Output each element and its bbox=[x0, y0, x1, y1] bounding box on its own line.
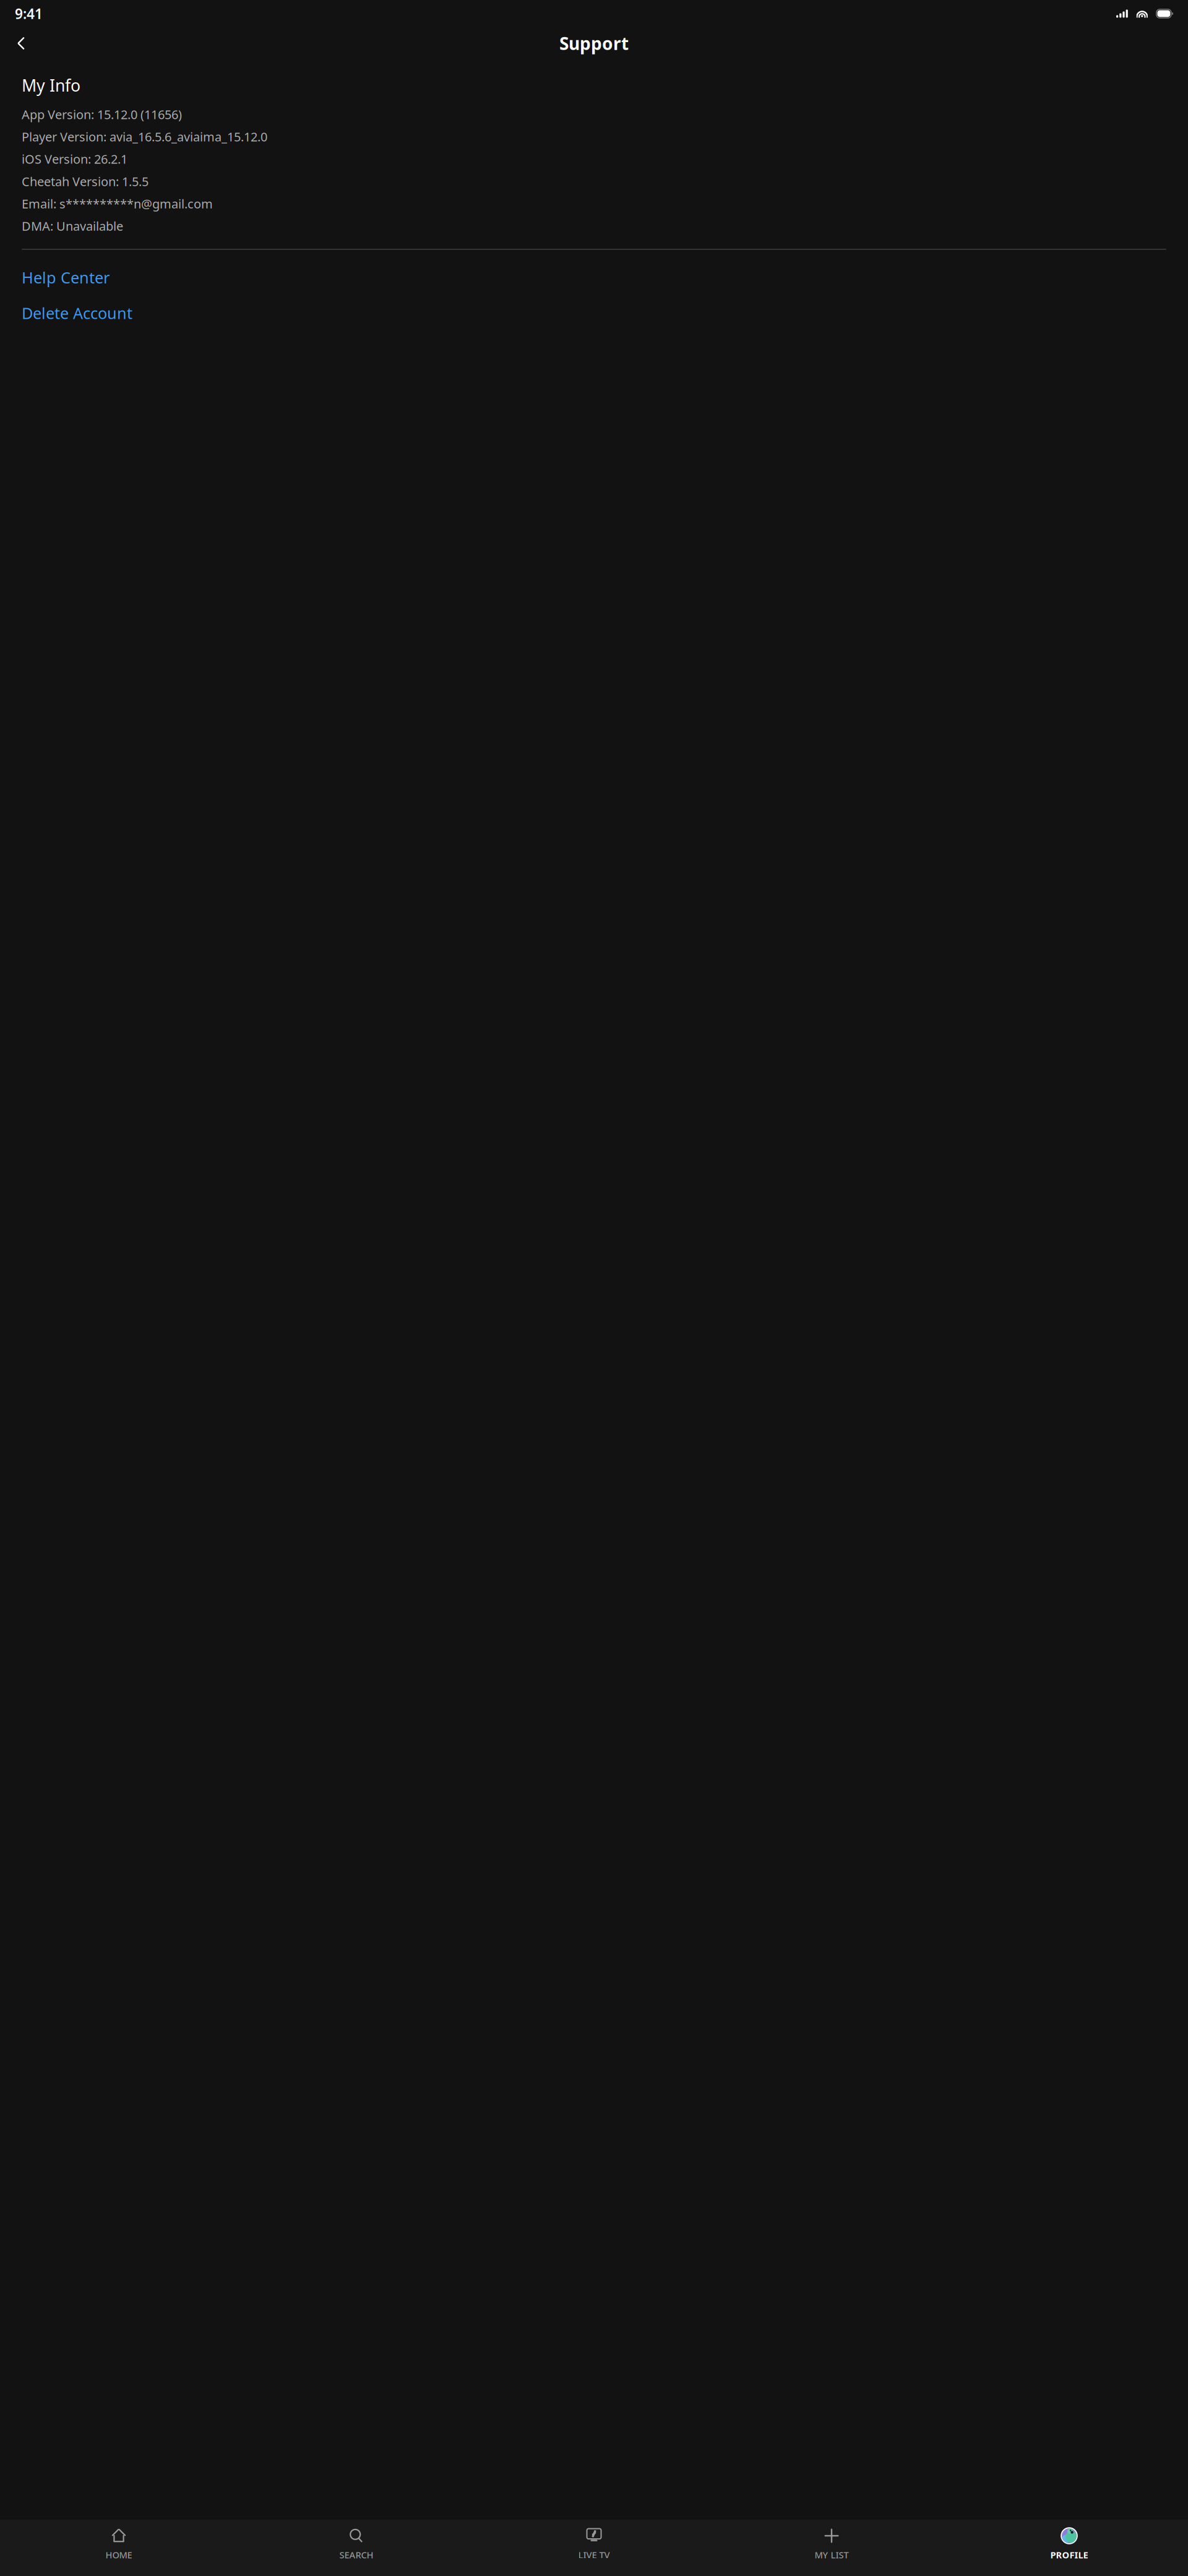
button[interactable]: Back bbox=[7, 30, 35, 57]
staticText: iOS Version: 26.2.1 bbox=[22, 151, 127, 167]
button[interactable]: Help Center bbox=[22, 263, 1166, 291]
staticText: DMA: Unavailable bbox=[22, 218, 123, 234]
staticText: MY LIST bbox=[815, 2549, 849, 2561]
button[interactable]: LIVE TV bbox=[475, 2520, 713, 2567]
button[interactable]: MY LIST bbox=[713, 2520, 950, 2567]
button[interactable]: HOME bbox=[0, 2520, 238, 2567]
staticText: 9:41 bbox=[15, 4, 43, 23]
button[interactable]: Delete Account bbox=[22, 299, 1166, 327]
staticText: PROFILE bbox=[1050, 2549, 1088, 2561]
button[interactable]: SEARCH bbox=[238, 2520, 475, 2567]
staticText: My Info bbox=[22, 74, 80, 96]
staticText: HOME bbox=[105, 2549, 132, 2561]
button[interactable]: PROFILE bbox=[950, 2520, 1188, 2567]
staticText: LIVE TV bbox=[578, 2549, 610, 2561]
staticText: Cheetah Version: 1.5.5 bbox=[22, 173, 148, 190]
staticText: Player Version: avia_16.5.6_aviaima_15.1… bbox=[22, 128, 267, 145]
staticText: Email: s**********n@gmail.com bbox=[22, 195, 213, 212]
staticText: App Version: 15.12.0 (11656) bbox=[22, 106, 182, 123]
staticText: Delete Account bbox=[22, 303, 132, 323]
staticText: Help Center bbox=[22, 267, 110, 288]
staticText: Support bbox=[559, 32, 629, 55]
staticText: SEARCH bbox=[339, 2549, 373, 2561]
